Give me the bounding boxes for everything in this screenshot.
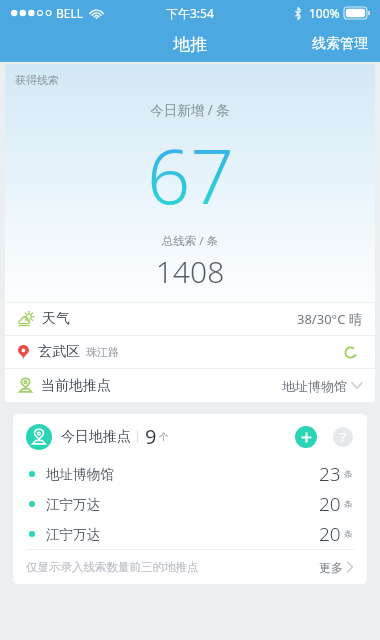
staticText: 9: [145, 423, 157, 450]
button[interactable]: 当前地推点: [5, 369, 375, 402]
staticText: 总线索 / 条: [5, 233, 375, 249]
staticText: 天气: [42, 310, 70, 328]
staticText: 今日地推点: [61, 428, 131, 446]
staticText: 23: [319, 461, 341, 487]
staticText: 仅显示录入线索数量前三的地推点: [26, 560, 199, 574]
staticText: 玄武区: [38, 343, 80, 361]
staticText: 条: [344, 469, 353, 480]
staticText: 67: [147, 123, 234, 227]
staticText: 江宁万达: [46, 496, 100, 513]
staticText: 今日新增 / 条: [5, 101, 375, 119]
staticText: 当前地推点: [41, 377, 111, 395]
staticText: 地址博物馆: [282, 378, 347, 394]
button[interactable]: 江宁万达: [13, 489, 367, 519]
staticText: 更多: [319, 560, 343, 575]
staticText: 条: [344, 529, 353, 540]
staticText: 个: [159, 431, 169, 443]
staticText: 珠江路: [86, 345, 119, 359]
button[interactable]: 玄武区: [5, 336, 375, 368]
button[interactable]: 江宁万达: [13, 519, 367, 549]
staticText: 获得线索: [15, 73, 59, 87]
button[interactable]: 天气: [5, 303, 375, 335]
button[interactable]: Add spot: [295, 426, 317, 448]
staticText: 条: [344, 499, 353, 510]
staticText: 20: [319, 521, 341, 547]
staticText: 1408: [5, 251, 375, 292]
staticText: 江宁万达: [46, 526, 100, 543]
staticText: 地推: [173, 34, 207, 55]
staticText: ?: [340, 428, 346, 446]
button[interactable]: 仅显示录入线索数量前三的地推点: [13, 550, 367, 584]
button[interactable]: 地址博物馆: [13, 459, 367, 489]
button[interactable]: 线索管理: [300, 29, 380, 59]
staticText: 线索管理: [312, 35, 368, 53]
staticText: 100%: [309, 5, 340, 21]
button[interactable]: Refresh location: [339, 341, 362, 364]
button[interactable]: Help: [333, 427, 353, 447]
staticText: 地址博物馆: [46, 466, 114, 483]
staticText: 20: [319, 491, 341, 517]
staticText: 下午3:54: [166, 5, 214, 21]
staticText: BELL: [56, 5, 84, 21]
staticText: 38/30°C 晴: [297, 310, 362, 328]
